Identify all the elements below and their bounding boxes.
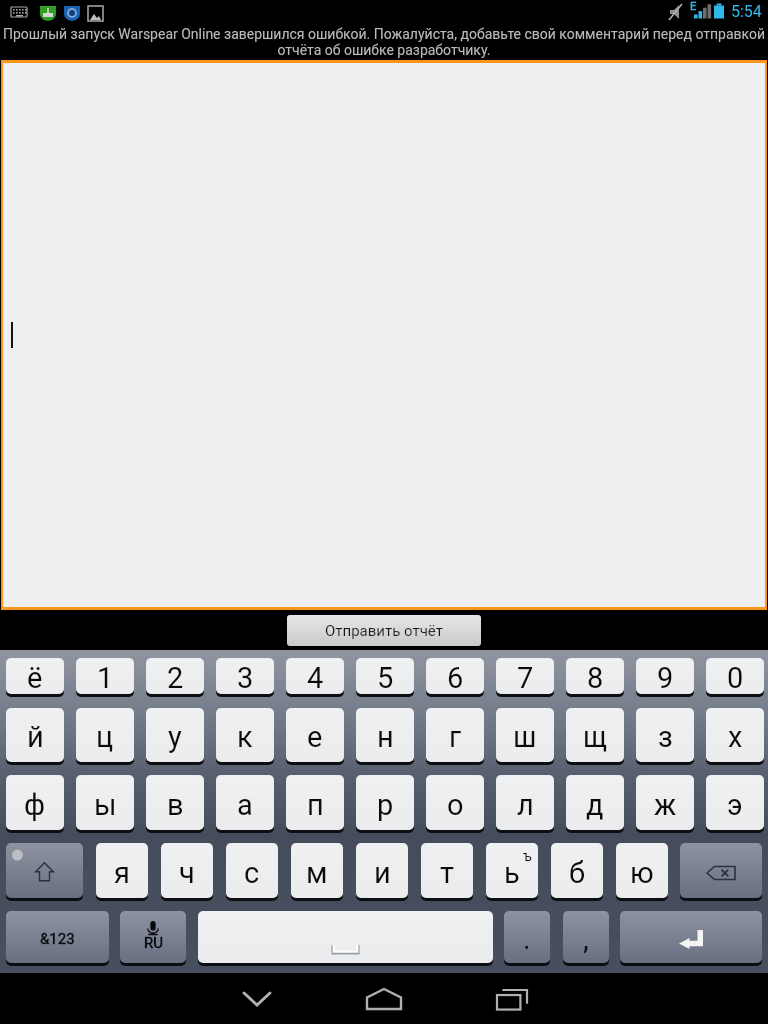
- button[interactable]: а: [216, 775, 274, 830]
- staticText: 9: [657, 661, 674, 694]
- staticText: 2: [167, 661, 184, 694]
- button[interactable]: к: [216, 708, 274, 762]
- button[interactable]: 5: [356, 658, 414, 694]
- button[interactable]: Hide keyboard: [217, 974, 297, 1024]
- button[interactable]: 8: [566, 658, 624, 694]
- button[interactable]: и: [356, 843, 408, 898]
- staticText: д: [586, 788, 604, 822]
- staticText: у: [168, 720, 182, 754]
- button[interactable]: г: [426, 708, 484, 762]
- button[interactable]: Recent apps: [472, 974, 552, 1024]
- staticText: E: [690, 0, 697, 13]
- button[interactable]: Enter: [620, 911, 762, 963]
- button[interactable]: т: [421, 843, 473, 898]
- button[interactable]: 4: [286, 658, 344, 694]
- staticText: м: [306, 856, 328, 890]
- button[interactable]: .: [504, 911, 550, 963]
- button[interactable]: Change language: [120, 911, 186, 963]
- button[interactable]: Отправить отчёт: [287, 615, 481, 646]
- button[interactable]: л: [496, 775, 554, 830]
- button[interactable]: н: [356, 708, 414, 762]
- button[interactable]: 0: [706, 658, 764, 694]
- staticText: т: [440, 856, 454, 890]
- staticText: ц: [96, 720, 114, 754]
- button[interactable]: ш: [496, 708, 554, 762]
- staticText: с: [244, 856, 260, 890]
- button[interactable]: щ: [566, 708, 624, 762]
- staticText: щ: [583, 720, 608, 754]
- button[interactable]: ь: [486, 843, 538, 898]
- staticText: х: [728, 720, 743, 754]
- staticText: о: [447, 788, 464, 822]
- button[interactable]: ы: [76, 775, 134, 830]
- button[interactable]: х: [706, 708, 764, 762]
- button[interactable]: Shift: [6, 843, 83, 898]
- staticText: э: [727, 788, 743, 822]
- button[interactable]: 9: [636, 658, 694, 694]
- button[interactable]: Backspace: [680, 843, 762, 898]
- staticText: 5: [377, 661, 394, 694]
- button[interactable]: 1: [76, 658, 134, 694]
- button[interactable]: я: [96, 843, 148, 898]
- button[interactable]: ю: [616, 843, 668, 898]
- staticText: .: [523, 922, 531, 956]
- staticText: я: [114, 856, 130, 890]
- staticText: б: [569, 856, 586, 890]
- staticText: ы: [94, 788, 117, 822]
- button[interactable]: д: [566, 775, 624, 830]
- staticText: 1: [97, 661, 114, 694]
- button[interactable]: о: [426, 775, 484, 830]
- staticText: а: [237, 788, 253, 822]
- staticText: и: [374, 856, 391, 890]
- staticText: Прошлый запуск Warspear Online завершилс…: [1, 26, 767, 58]
- button[interactable]: ё: [6, 658, 64, 694]
- staticText: н: [377, 720, 394, 754]
- button[interactable]: с: [226, 843, 278, 898]
- staticText: 4: [307, 661, 324, 694]
- button[interactable]: в: [146, 775, 204, 830]
- staticText: 3: [237, 661, 254, 694]
- button[interactable]: 3: [216, 658, 274, 694]
- button[interactable]: ч: [161, 843, 213, 898]
- button[interactable]: &123: [6, 911, 109, 963]
- button[interactable]: э: [706, 775, 764, 830]
- staticText: ф: [24, 788, 46, 822]
- staticText: 8: [587, 661, 604, 694]
- staticText: ь: [504, 856, 520, 890]
- button[interactable]: е: [286, 708, 344, 762]
- staticText: г: [449, 720, 462, 754]
- staticText: Отправить отчёт: [325, 622, 443, 640]
- button[interactable]: ф: [6, 775, 64, 830]
- staticText: ш: [513, 720, 537, 754]
- staticText: &123: [40, 930, 75, 948]
- button[interactable]: Space: [198, 911, 493, 963]
- staticText: ,: [583, 922, 589, 956]
- staticText: ж: [654, 788, 677, 822]
- button[interactable]: б: [551, 843, 603, 898]
- staticText: ё: [27, 661, 43, 694]
- button[interactable]: п: [286, 775, 344, 830]
- button[interactable]: м: [291, 843, 343, 898]
- staticText: ю: [630, 856, 654, 890]
- staticText: л: [517, 788, 534, 822]
- button[interactable]: Home: [344, 974, 424, 1024]
- staticText: п: [307, 788, 324, 822]
- button[interactable]: й: [6, 708, 64, 762]
- button[interactable]: ц: [76, 708, 134, 762]
- button[interactable]: 6: [426, 658, 484, 694]
- button[interactable]: ж: [636, 775, 694, 830]
- button[interactable]: 2: [146, 658, 204, 694]
- staticText: р: [377, 788, 394, 822]
- staticText: RU: [144, 934, 163, 952]
- staticText: ъ: [523, 848, 532, 864]
- staticText: ч: [179, 856, 195, 890]
- button[interactable]: ,: [563, 911, 609, 963]
- button[interactable]: р: [356, 775, 414, 830]
- button[interactable]: з: [636, 708, 694, 762]
- staticText: е: [307, 720, 323, 754]
- staticText: к: [237, 720, 253, 754]
- staticText: 5:54: [731, 2, 762, 21]
- staticText: з: [658, 720, 673, 754]
- button[interactable]: у: [146, 708, 204, 762]
- button[interactable]: 7: [496, 658, 554, 694]
